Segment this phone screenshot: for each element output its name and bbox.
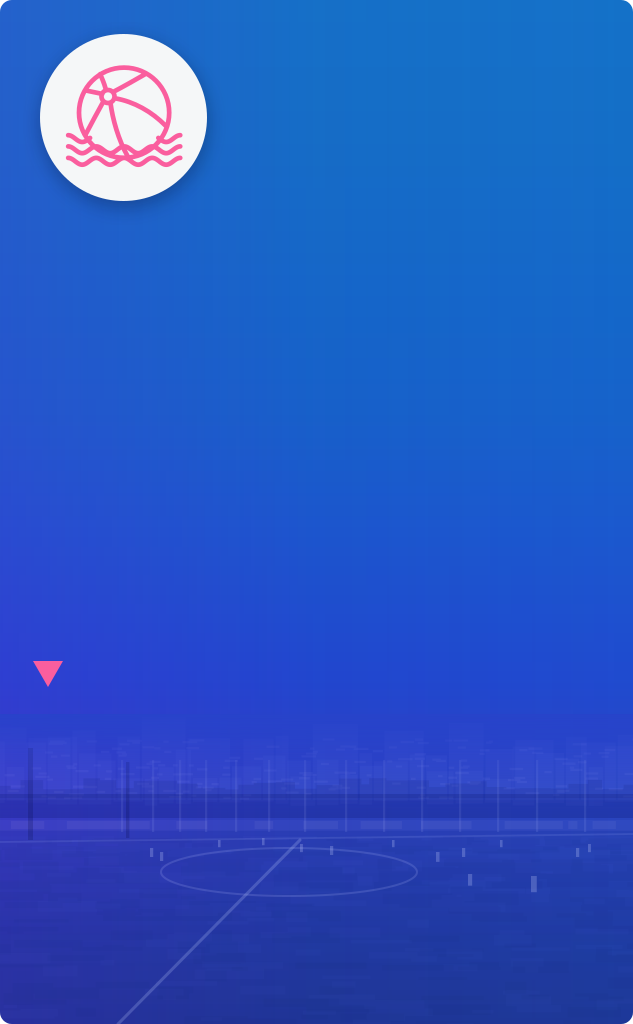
button[interactable]: Beach ball [40, 34, 207, 201]
